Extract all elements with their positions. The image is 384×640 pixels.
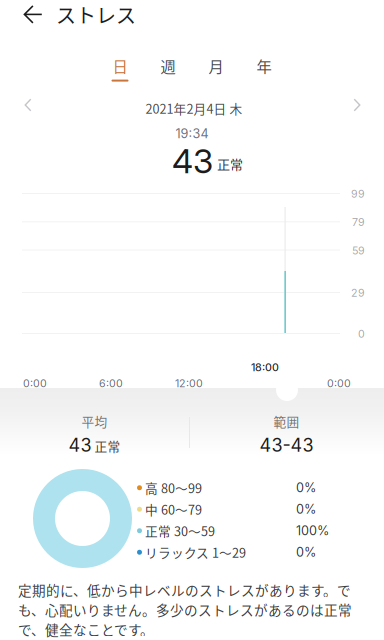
staticText: 59	[352, 244, 365, 257]
staticText: 0:00	[23, 377, 47, 390]
staticText: 平均	[81, 412, 107, 430]
staticText: 正常	[217, 154, 243, 173]
staticText: 29	[351, 286, 365, 299]
button[interactable]: Next day	[341, 91, 373, 119]
button[interactable]: Previous day	[12, 91, 44, 119]
button[interactable]: 年	[240, 53, 288, 83]
staticText: 正常	[94, 437, 120, 455]
staticText: 日	[112, 54, 127, 77]
button[interactable]: 週	[144, 53, 192, 83]
staticText: リラックス 1〜29	[145, 543, 246, 561]
staticText: 中 60〜79	[145, 500, 202, 518]
staticText: 100%	[296, 523, 329, 538]
staticText: 高 80〜99	[145, 479, 202, 497]
staticText: 18:00	[251, 361, 279, 374]
staticText: 0%	[296, 545, 316, 560]
staticText: 43	[68, 434, 91, 456]
button[interactable]: 月	[192, 53, 240, 83]
staticText: 0:00	[327, 377, 351, 390]
staticText: 正常 30〜59	[145, 522, 215, 540]
staticText: 2021年2月4日 木	[145, 99, 242, 117]
staticText: 79	[352, 216, 365, 229]
staticText: 範囲	[273, 412, 299, 430]
staticText: 43	[172, 141, 213, 181]
staticText: 0	[358, 327, 365, 340]
staticText: 0%	[296, 502, 316, 517]
staticText: 19:34	[175, 126, 208, 141]
staticText: 年	[256, 54, 271, 77]
staticText: 週	[160, 54, 175, 77]
staticText: 6:00	[99, 377, 123, 390]
staticText: 0%	[296, 480, 316, 495]
staticText: 43-43	[259, 434, 313, 456]
button[interactable]: 日	[96, 53, 144, 83]
staticText: 12:00	[175, 377, 203, 390]
staticText: 定期的に、低から中レベルのストレスがあります。でも、心配いりません。多少のストレ…	[18, 580, 352, 639]
staticText: 99	[351, 187, 365, 200]
button[interactable]: Back	[14, 5, 52, 24]
staticText: 月	[208, 54, 223, 77]
staticText: ストレス	[56, 0, 136, 29]
